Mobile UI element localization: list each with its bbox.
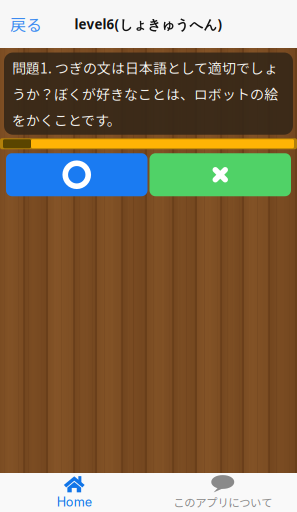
staticText: 問題1. つぎの文は日本語として適切でしょうか？ぼくが好きなことは、ロボットの絵… [12, 57, 278, 130]
staticText: Home [57, 494, 92, 510]
staticText: 戻る [10, 12, 42, 36]
button[interactable]: まる [6, 153, 147, 196]
button[interactable]: ばつ [149, 153, 291, 196]
button[interactable]: 戻る [0, 2, 52, 46]
staticText: level6(しょきゅうへん) [74, 15, 222, 33]
button[interactable]: Home [0, 473, 148, 512]
button[interactable]: このアプリについて [148, 473, 297, 512]
staticText: このアプリについて [173, 494, 272, 510]
